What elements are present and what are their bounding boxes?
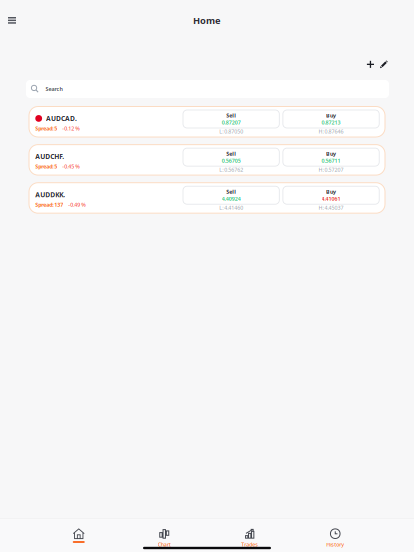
staticText: H: 4.45037 [318,204,343,211]
staticText: Sell [226,150,236,157]
staticText: L: 4.41460 [219,204,243,211]
staticText: Spread: 137 [35,201,63,208]
staticText: Spread: 5 [35,163,57,170]
staticText: 4.40924 [222,195,241,202]
button[interactable]: Edit watchlist [375,56,392,73]
button[interactable]: AUDCHF. [29,145,385,175]
button[interactable]: AUDDKK. [29,183,385,213]
staticText: Search [45,85,62,93]
staticText: -0.12 % [62,125,80,132]
staticText: L: 0.56762 [219,166,243,173]
staticText: Spread: 5 [35,125,57,132]
button[interactable]: History [292,519,378,544]
staticText: 0.56705 [222,157,241,164]
button[interactable]: Home [36,519,121,544]
button[interactable]: AUDCAD. [29,106,385,137]
button[interactable]: Chart [121,519,207,544]
staticText: H: 0.87646 [318,128,343,135]
staticText: -0.49 % [68,201,86,208]
staticText: Sell [226,188,236,195]
staticText: 0.87213 [321,119,340,126]
staticText: Buy [326,188,336,195]
staticText: Sell [226,112,236,119]
button[interactable]: Buy [283,148,379,166]
staticText: AUDDKK. [35,190,65,199]
button[interactable]: Trades [207,519,292,544]
button[interactable]: Add symbol [362,56,375,72]
staticText: History [326,541,344,548]
staticText: 4.41061 [321,195,340,202]
button[interactable]: Menu [3,12,21,29]
staticText: Chart [158,541,171,548]
staticText: -0.45 % [62,163,80,170]
button[interactable]: Search [26,80,389,98]
staticText: AUDCHF. [35,152,64,161]
staticText: AUDCAD. [46,114,77,123]
button[interactable]: Sell [183,148,279,166]
button[interactable]: Sell [183,186,279,204]
button[interactable]: Sell [183,110,279,128]
staticText: H: 0.57207 [318,166,343,173]
button[interactable]: Buy [283,110,379,128]
staticText: Buy [326,112,336,119]
staticText: Buy [326,150,336,157]
staticText: 0.56711 [321,157,340,164]
staticText: Home [193,14,221,27]
staticText: 0.87207 [222,119,241,126]
button[interactable]: Buy [283,186,379,204]
staticText: L: 0.87050 [219,128,243,135]
staticText: Trades [241,541,258,548]
